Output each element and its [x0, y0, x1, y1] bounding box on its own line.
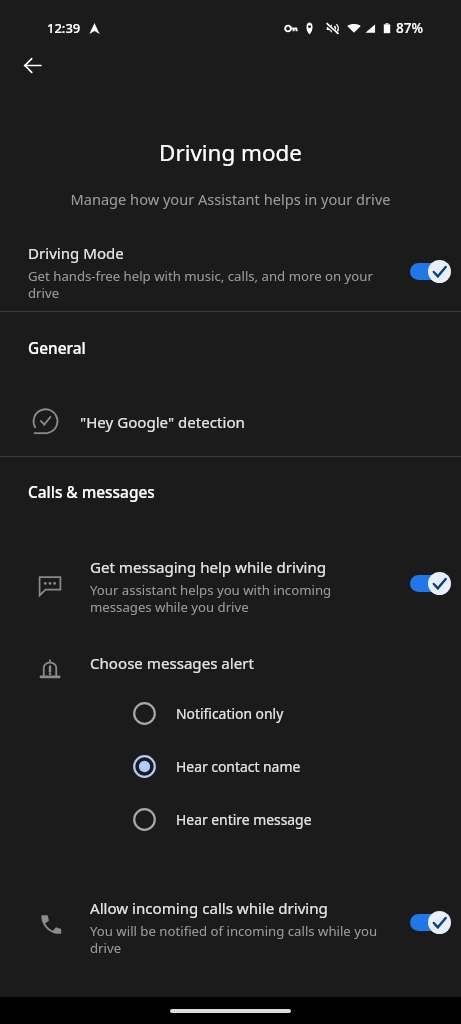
button[interactable]: Driving Mode: [0, 243, 461, 302]
button[interactable]: Back: [12, 45, 52, 85]
staticText: Notification only: [176, 704, 284, 723]
staticText: Hear entire message: [176, 810, 312, 829]
button[interactable]: Get messaging help while driving: [0, 557, 461, 616]
staticText: 12:39: [47, 19, 81, 37]
button[interactable]: Toggle: [410, 907, 451, 937]
button[interactable]: Toggle: [410, 256, 451, 286]
staticText: Allow incoming calls while driving: [90, 898, 328, 919]
staticText: General: [28, 338, 86, 359]
staticText: Hear contact name: [176, 757, 301, 776]
staticText: Choose messages alert: [90, 653, 254, 674]
staticText: Your assistant helps you with incoming m…: [90, 581, 385, 616]
staticText: Get messaging help while driving: [90, 557, 327, 578]
button[interactable]: Allow incoming calls while driving: [0, 898, 461, 957]
staticText: Driving mode: [0, 137, 461, 168]
staticText: 87%: [396, 19, 423, 37]
staticText: You will be notified of incoming calls w…: [90, 922, 385, 957]
staticText: Get hands-free help with music, calls, a…: [28, 267, 398, 302]
button[interactable]: Hear contact name: [0, 740, 461, 793]
button[interactable]: Notification only: [0, 687, 461, 740]
staticText: Manage how your Assistant helps in your …: [0, 189, 461, 209]
staticText: Driving Mode: [28, 243, 124, 264]
button[interactable]: Hear entire message: [0, 793, 461, 846]
button[interactable]: Toggle: [410, 568, 451, 598]
staticText: Calls & messages: [28, 482, 155, 503]
button[interactable]: "Hey Google" detection: [0, 403, 461, 441]
staticText: "Hey Google" detection: [80, 412, 245, 433]
